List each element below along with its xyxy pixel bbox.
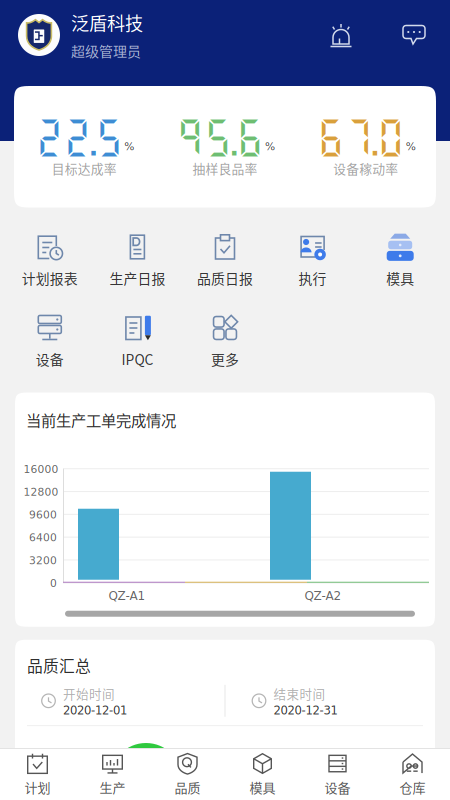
staticText: 仓库	[399, 777, 425, 796]
button[interactable]: 计划报表	[6, 225, 94, 295]
staticText: 2020-12-31	[273, 704, 337, 717]
staticText: 12800	[23, 486, 58, 498]
staticText: %	[265, 140, 275, 153]
staticText: 生产日报	[109, 268, 165, 288]
button[interactable]: 执行	[269, 225, 356, 295]
staticText: 设备	[36, 349, 64, 369]
staticText: 设备稼动率	[333, 159, 398, 177]
button[interactable]: 设备	[6, 306, 94, 376]
staticText: 结束时间	[273, 684, 325, 703]
staticText: %	[124, 140, 134, 153]
button[interactable]: 结束时间	[225, 684, 435, 717]
button[interactable]: 模具	[356, 225, 444, 295]
button[interactable]: 品质日报	[181, 225, 269, 295]
button[interactable]: 报警	[324, 18, 358, 51]
staticText: 品质日报	[197, 268, 253, 288]
button[interactable]: 仓库	[375, 749, 450, 800]
staticText: 16000	[23, 463, 58, 475]
staticText: 更多	[211, 349, 239, 369]
staticText: 生产	[99, 777, 125, 796]
staticText: QZ-A2	[304, 589, 341, 603]
staticText: 超级管理员	[71, 40, 141, 61]
staticText: 品质	[174, 777, 200, 796]
staticText: IPQC	[121, 349, 153, 369]
staticText: 品质汇总	[27, 654, 91, 676]
staticText: 95.6	[176, 114, 264, 160]
staticText: 67.0	[317, 114, 405, 160]
staticText: 执行	[299, 268, 327, 288]
staticText: 目标达成率	[52, 159, 117, 177]
button[interactable]: 计划	[0, 749, 75, 800]
staticText: %	[406, 140, 416, 153]
button[interactable]: 生产日报	[94, 225, 181, 295]
button[interactable]: 生产	[75, 749, 150, 800]
button[interactable]: IPQC	[94, 306, 181, 376]
button[interactable]: 品质	[150, 749, 225, 800]
staticText: 模具	[249, 777, 275, 796]
staticText: 9600	[29, 509, 57, 521]
staticText: 22.5	[35, 114, 123, 160]
button[interactable]: 开始时间	[15, 684, 224, 717]
staticText: 6400	[29, 531, 57, 544]
button[interactable]: 设备	[300, 749, 375, 800]
staticText: QZ-A1	[108, 589, 145, 603]
button[interactable]: 消息	[396, 20, 432, 49]
staticText: 模具	[386, 268, 414, 288]
staticText: 设备	[324, 777, 350, 796]
button[interactable]: 模具	[225, 749, 300, 800]
staticText: 泛盾科技	[71, 9, 143, 35]
staticText: 开始时间	[63, 684, 115, 703]
staticText: 2020-12-01	[63, 704, 127, 717]
staticText: 抽样良品率	[192, 159, 257, 177]
staticText: 计划报表	[22, 268, 78, 288]
staticText: 0	[50, 577, 57, 589]
staticText: 当前生产工单完成情况	[26, 408, 176, 431]
staticText: 3200	[29, 554, 57, 567]
button[interactable]: 更多	[181, 306, 269, 376]
staticText: 计划	[24, 777, 50, 796]
